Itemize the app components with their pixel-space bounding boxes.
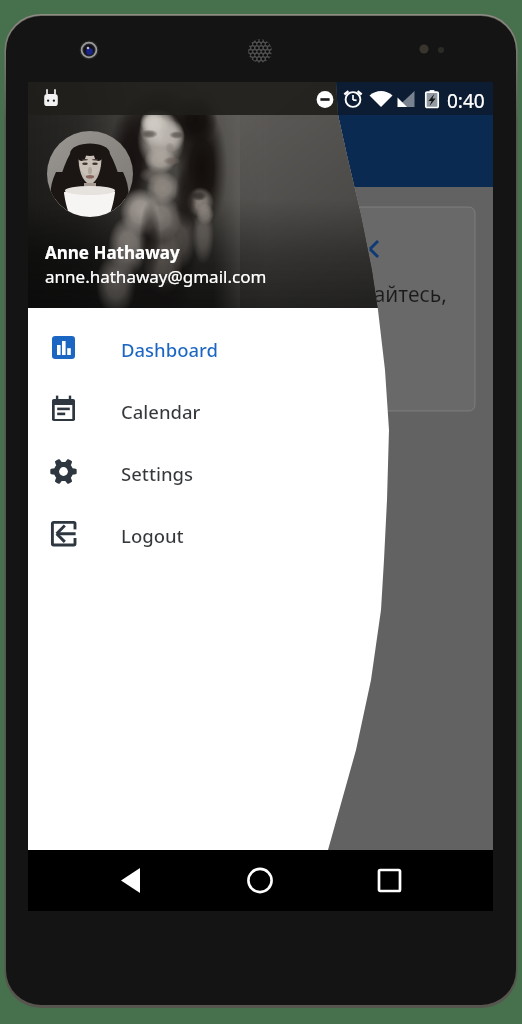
button[interactable]: Anne Hathaway — [28, 115, 338, 310]
staticText: Anne Hathaway — [45, 241, 180, 264]
staticText: Dashboard — [121, 337, 218, 362]
button[interactable]: Logout — [28, 503, 358, 565]
button[interactable]: Settings — [28, 441, 358, 503]
staticText: 0:40 — [447, 88, 485, 114]
staticText: Calendar — [121, 399, 201, 424]
staticText: Settings — [121, 461, 194, 486]
staticText: anne.hathaway@gmail.com — [45, 265, 267, 288]
staticText: Никогда не сдавайтесь, — [207, 280, 447, 309]
button[interactable]: Calendar — [28, 379, 358, 441]
staticText: Logout — [121, 523, 184, 548]
button[interactable]: Dashboard — [28, 317, 358, 379]
